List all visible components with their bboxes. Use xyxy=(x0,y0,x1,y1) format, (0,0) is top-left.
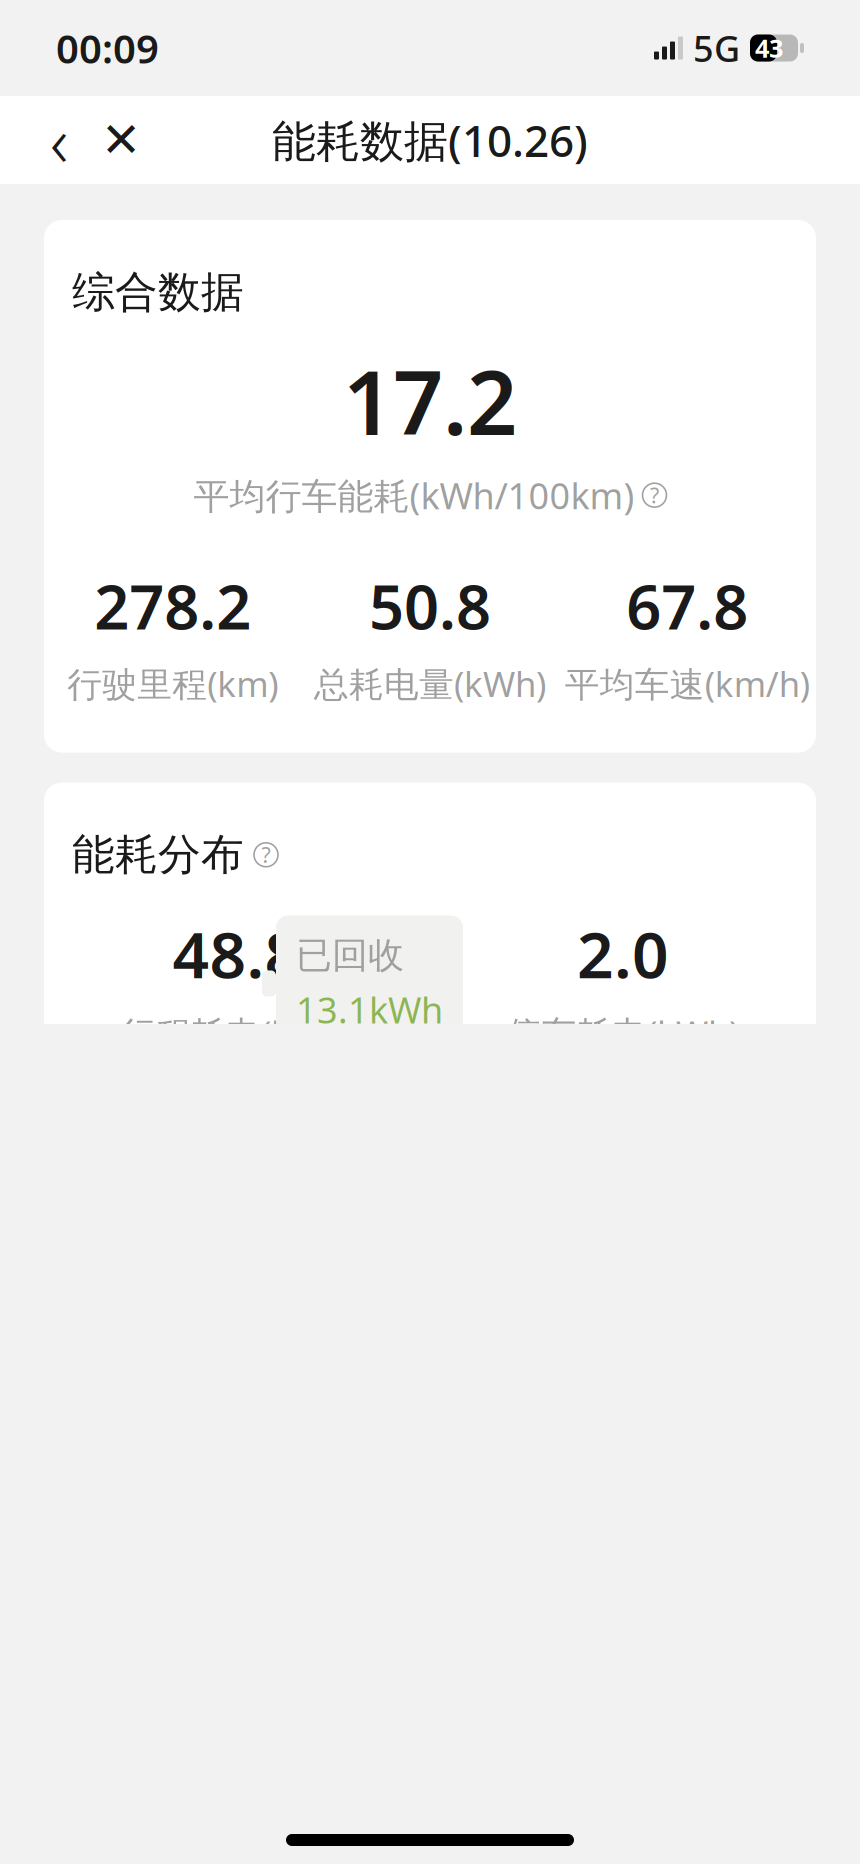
staticText: 已回收 xyxy=(296,933,404,978)
staticText: 行驶里程(km) xyxy=(67,660,278,706)
button[interactable]: Close xyxy=(90,102,152,178)
staticText: 2.0 xyxy=(577,911,669,996)
staticText: 行程耗电(kWh) xyxy=(121,1010,353,1056)
staticText: 17.2 xyxy=(343,342,517,459)
staticText: 综合数据 xyxy=(72,266,244,318)
staticText: 278.2 xyxy=(94,565,251,646)
staticText: 43 xyxy=(755,31,783,65)
staticText: 平均行车能耗(kWh/100km) xyxy=(193,471,634,519)
staticText: 停车耗电(kWh) xyxy=(507,1010,739,1056)
staticText: 48.8 xyxy=(172,911,301,996)
staticText: ? xyxy=(650,481,659,509)
button[interactable]: Back xyxy=(28,102,90,178)
staticText: 67.8 xyxy=(626,565,748,646)
staticText: ? xyxy=(261,841,270,869)
staticText: 00:09 xyxy=(56,21,159,74)
staticText: 50.8 xyxy=(369,565,491,646)
staticText: 总耗电量(kWh) xyxy=(314,660,546,706)
staticText: 13.1kWh xyxy=(296,986,443,1033)
staticText: 5G xyxy=(693,24,740,72)
staticText: 能耗分布 xyxy=(72,829,244,881)
staticText: ✕ xyxy=(101,113,141,167)
staticText: 能耗数据(10.26) xyxy=(272,111,588,169)
staticText: 平均车速(km/h) xyxy=(565,660,810,706)
staticText: ‹ xyxy=(50,94,68,186)
